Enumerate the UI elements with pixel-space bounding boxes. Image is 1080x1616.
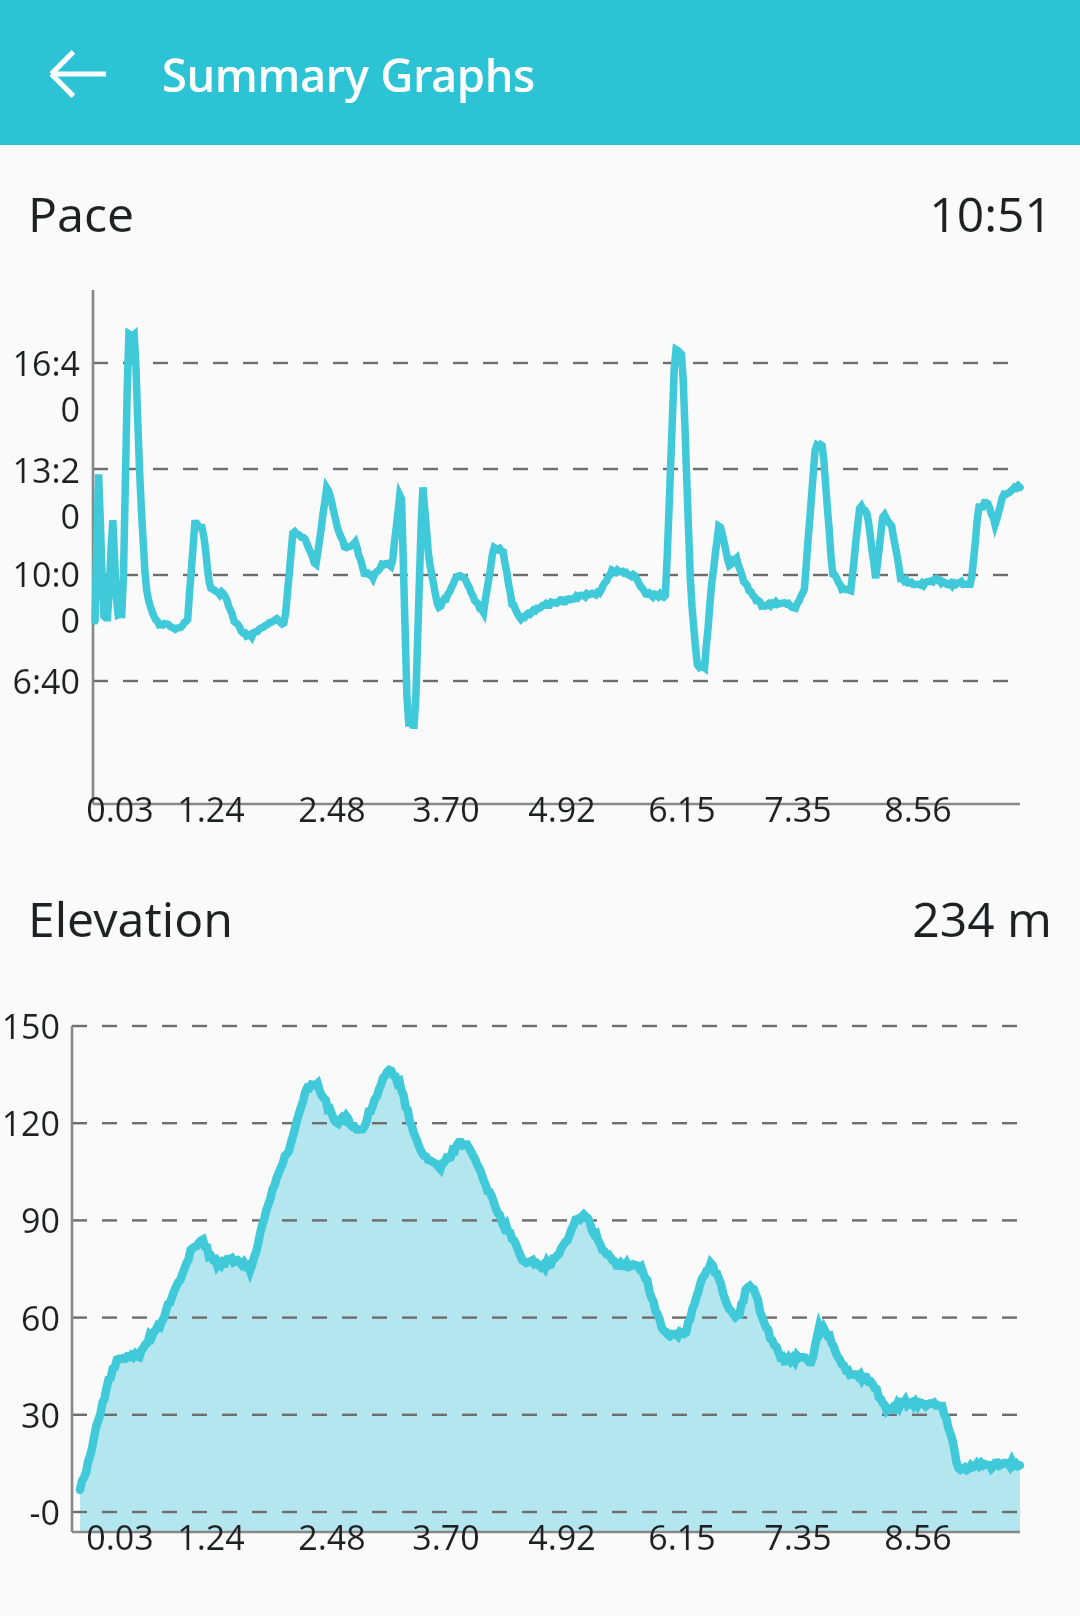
staticText: 60	[0, 1295, 60, 1341]
staticText: 6.15	[622, 786, 742, 832]
staticText: 2.48	[272, 1514, 392, 1560]
staticText: -0	[0, 1489, 60, 1535]
staticText: 8.56	[858, 786, 978, 832]
staticText: Summary Graphs	[162, 44, 536, 105]
button[interactable]: Back	[32, 28, 124, 120]
staticText: 0.03	[60, 786, 180, 832]
staticText: 8.56	[858, 1514, 978, 1560]
staticText: 4.92	[502, 1514, 622, 1560]
staticText: 1.24	[151, 786, 271, 832]
staticText: 120	[0, 1100, 60, 1146]
staticText: 90	[0, 1197, 60, 1243]
staticText: 7.35	[738, 786, 858, 832]
staticText: 10:00	[0, 551, 80, 643]
staticText: 6:40	[0, 658, 80, 704]
staticText: 234 m	[0, 886, 1052, 951]
staticText: Elevation	[28, 886, 233, 951]
staticText: 1.24	[151, 1514, 271, 1560]
staticText: 0.03	[60, 1514, 180, 1560]
staticText: 150	[0, 1003, 60, 1049]
staticText: 16:40	[0, 340, 80, 432]
staticText: 3.70	[386, 1514, 506, 1560]
staticText: 30	[0, 1392, 60, 1438]
staticText: 4.92	[502, 786, 622, 832]
staticText: 10:51	[0, 181, 1052, 246]
staticText: 7.35	[738, 1514, 858, 1560]
staticText: 2.48	[272, 786, 392, 832]
staticText: Pace	[28, 181, 135, 246]
staticText: 6.15	[622, 1514, 742, 1560]
staticText: 13:20	[0, 447, 80, 539]
staticText: 3.70	[386, 786, 506, 832]
